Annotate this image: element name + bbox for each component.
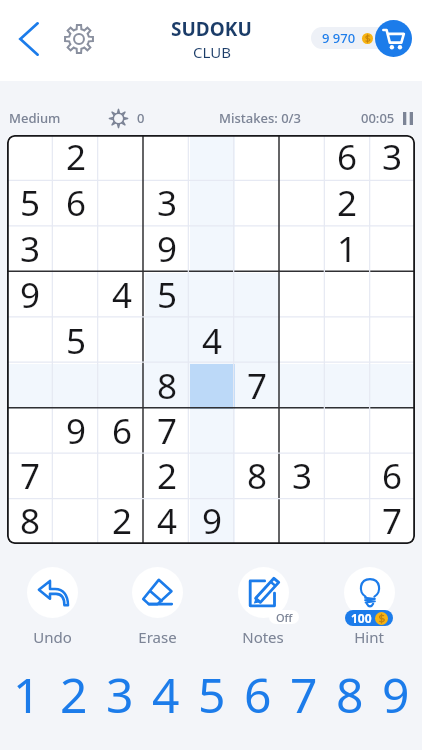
button[interactable]	[7, 319, 53, 364]
button[interactable]	[370, 319, 415, 364]
button[interactable]: 9	[145, 227, 190, 273]
button[interactable]: Pause	[400, 110, 416, 126]
button[interactable]	[99, 135, 145, 181]
button[interactable]	[370, 273, 415, 319]
button[interactable]	[280, 364, 325, 409]
button[interactable]	[53, 273, 99, 319]
button[interactable]: 3	[7, 227, 53, 273]
button[interactable]: 6	[99, 409, 145, 454]
button[interactable]: 4	[143, 662, 189, 718]
button[interactable]: Erase	[105, 567, 210, 647]
button[interactable]	[99, 181, 145, 227]
button[interactable]	[325, 454, 370, 499]
button[interactable]	[53, 227, 99, 273]
button[interactable]: 3	[97, 662, 143, 718]
button[interactable]	[370, 409, 415, 454]
button[interactable]: 9	[53, 409, 99, 454]
button[interactable]: 8	[327, 662, 373, 718]
button[interactable]	[190, 135, 235, 181]
button[interactable]	[370, 181, 415, 227]
button[interactable]	[280, 273, 325, 319]
button[interactable]: 3	[280, 454, 325, 499]
button[interactable]	[145, 135, 190, 181]
button[interactable]	[99, 319, 145, 364]
button[interactable]: 1	[3, 662, 50, 718]
button[interactable]: 7	[370, 499, 415, 544]
button[interactable]: 6	[370, 454, 415, 499]
button[interactable]: 7	[235, 364, 280, 409]
button[interactable]	[235, 319, 280, 364]
button[interactable]	[325, 499, 370, 544]
button[interactable]: 2	[99, 499, 145, 544]
button[interactable]: 2	[325, 181, 370, 227]
button[interactable]	[99, 227, 145, 273]
button[interactable]	[235, 273, 280, 319]
button[interactable]: 2	[50, 662, 97, 718]
button[interactable]: 7	[281, 662, 327, 718]
button[interactable]: 4	[145, 499, 190, 544]
button[interactable]	[280, 181, 325, 227]
button[interactable]: 5	[53, 319, 99, 364]
button[interactable]	[7, 364, 53, 409]
button[interactable]: Off	[210, 567, 316, 647]
button[interactable]	[325, 273, 370, 319]
staticText: 3	[292, 452, 313, 497]
button[interactable]: 9	[190, 499, 235, 544]
button[interactable]	[325, 409, 370, 454]
button[interactable]: 5	[7, 181, 53, 227]
button[interactable]: 8	[7, 499, 53, 544]
button[interactable]	[235, 227, 280, 273]
button[interactable]: 2	[53, 135, 99, 181]
button[interactable]	[280, 499, 325, 544]
button[interactable]	[7, 135, 53, 181]
button[interactable]: Back	[8, 18, 50, 60]
button[interactable]	[53, 454, 99, 499]
button[interactable]	[280, 319, 325, 364]
button[interactable]	[53, 499, 99, 544]
button[interactable]: 9	[7, 273, 53, 319]
button[interactable]	[325, 364, 370, 409]
button[interactable]	[190, 227, 235, 273]
button[interactable]: 7	[7, 454, 53, 499]
button[interactable]: 8	[145, 364, 190, 409]
button[interactable]: 3	[145, 181, 190, 227]
button[interactable]: 3	[370, 135, 415, 181]
button[interactable]: 6	[235, 662, 281, 718]
button[interactable]: 9 970	[311, 27, 403, 49]
button[interactable]	[190, 364, 235, 409]
button[interactable]	[7, 409, 53, 454]
button[interactable]: 5	[145, 273, 190, 319]
button[interactable]	[370, 227, 415, 273]
button[interactable]	[280, 227, 325, 273]
button[interactable]: 2	[145, 454, 190, 499]
button[interactable]: 100	[316, 567, 422, 647]
button[interactable]	[99, 364, 145, 409]
button[interactable]	[99, 454, 145, 499]
button[interactable]: Settings	[58, 18, 100, 60]
button[interactable]: Shop	[375, 20, 412, 57]
button[interactable]	[235, 409, 280, 454]
button[interactable]: 4	[99, 273, 145, 319]
button[interactable]	[53, 364, 99, 409]
button[interactable]: 6	[53, 181, 99, 227]
button[interactable]	[235, 499, 280, 544]
button[interactable]: 1	[325, 227, 370, 273]
button[interactable]: 6	[325, 135, 370, 181]
button[interactable]	[280, 409, 325, 454]
button[interactable]: 5	[189, 662, 235, 718]
button[interactable]	[235, 135, 280, 181]
button[interactable]	[370, 364, 415, 409]
button[interactable]	[235, 181, 280, 227]
button[interactable]: 7	[145, 409, 190, 454]
button[interactable]: 9	[373, 662, 419, 718]
button[interactable]	[325, 319, 370, 364]
button[interactable]: 8	[235, 454, 280, 499]
button[interactable]: 4	[190, 319, 235, 364]
button[interactable]	[280, 135, 325, 181]
button[interactable]: Undo	[0, 567, 105, 647]
